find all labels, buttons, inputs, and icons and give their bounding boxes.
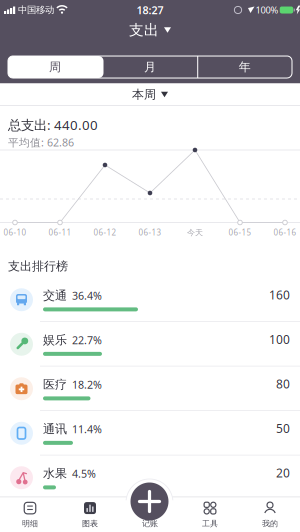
button[interactable]: 明细 [0, 496, 60, 532]
staticText: 20 [276, 465, 290, 481]
staticText: 记账 [142, 519, 158, 528]
staticText: 今天 [187, 228, 203, 237]
staticText: 本周 [132, 87, 156, 102]
button[interactable]: 记账 [120, 496, 180, 532]
staticText: 工具 [202, 519, 218, 528]
button[interactable]: 水果 [0, 455, 300, 500]
button[interactable]: 记账 [130, 482, 168, 520]
button[interactable]: 本周 [90, 83, 210, 105]
staticText: 年 [239, 60, 251, 74]
staticText: 100 [269, 331, 290, 347]
button[interactable]: 周 [8, 56, 102, 78]
button[interactable]: 通讯 [0, 411, 300, 455]
staticText: 平均值: 62.86 [8, 135, 74, 149]
staticText: 我的 [262, 519, 278, 528]
staticText: 水果 [43, 466, 67, 481]
staticText: 06-16 [273, 227, 296, 238]
staticText: 图表 [82, 519, 98, 528]
staticText: 11.4% [72, 422, 102, 436]
staticText: 06-15 [228, 227, 251, 238]
button[interactable]: 图表 [60, 496, 120, 532]
button[interactable]: 交通 [0, 277, 300, 322]
staticText: 中国移动 [18, 4, 54, 16]
button[interactable]: 娱乐 [0, 322, 300, 366]
staticText: 80 [276, 376, 290, 392]
staticText: 月 [144, 60, 156, 74]
staticText: 4.5% [72, 466, 96, 481]
staticText: 06-12 [93, 227, 116, 238]
button[interactable]: 支出 [129, 21, 171, 39]
staticText: 医疗 [43, 377, 67, 392]
button[interactable]: 工具 [180, 496, 240, 532]
staticText: 36.4% [72, 288, 102, 303]
staticText: 总支出: 440.00 [8, 116, 98, 134]
button[interactable]: 医疗 [0, 366, 300, 411]
staticText: 交通 [43, 288, 67, 303]
button[interactable]: 月 [103, 56, 197, 78]
staticText: 160 [269, 287, 290, 303]
button[interactable]: 我的 [240, 496, 300, 532]
staticText: 22.7% [72, 333, 102, 347]
button[interactable]: 年 [198, 56, 292, 78]
staticText: 06-13 [138, 227, 161, 238]
staticText: 支出 [129, 21, 159, 39]
staticText: 18.2% [72, 377, 102, 392]
staticText: 06-11 [48, 227, 71, 238]
staticText: 娱乐 [43, 333, 67, 347]
staticText: 06-10 [3, 227, 26, 238]
staticText: 周 [49, 60, 61, 74]
staticText: 通讯 [43, 422, 67, 436]
staticText: 18:27 [136, 3, 163, 17]
staticText: 明细 [22, 519, 38, 528]
staticText: 支出排行榜 [8, 259, 68, 273]
staticText: 100% [255, 4, 278, 16]
staticText: 50 [276, 420, 290, 436]
